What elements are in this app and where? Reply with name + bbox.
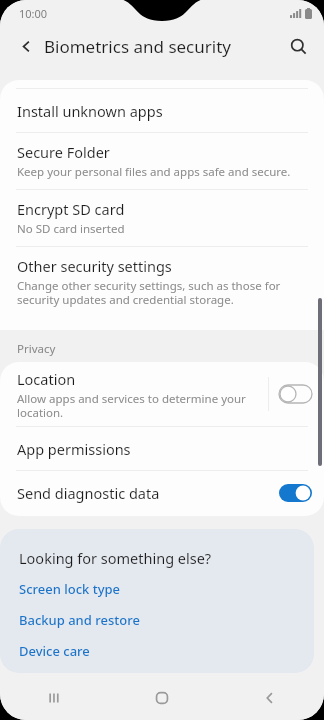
- staticText: No SD card inserted: [17, 221, 125, 237]
- staticText: Send diagnostic data: [17, 483, 160, 503]
- staticText: Screen lock type: [19, 580, 121, 598]
- staticText: Allow apps and services to determine you…: [17, 391, 246, 420]
- staticText: 10:00: [19, 6, 48, 21]
- button[interactable]: Home: [108, 676, 216, 720]
- button[interactable]: Secure Folder: [0, 133, 324, 189]
- button[interactable]: Back: [216, 676, 324, 720]
- button[interactable]: Send diagnostic data: [0, 471, 324, 515]
- staticText: Looking for something else?: [19, 548, 212, 568]
- staticText: Backup and restore: [19, 611, 140, 629]
- button[interactable]: Backup and restore: [19, 611, 314, 629]
- button[interactable]: Install unknown apps: [0, 89, 324, 132]
- button[interactable]: Encrypt SD card: [0, 190, 324, 246]
- button[interactable]: App permissions: [0, 427, 324, 470]
- staticText: Install unknown apps: [17, 101, 163, 121]
- button[interactable]: Location: [0, 362, 324, 426]
- staticText: Privacy: [17, 341, 56, 357]
- button[interactable]: Search: [281, 29, 315, 63]
- button[interactable]: Recent apps: [0, 676, 108, 720]
- button[interactable]: Navigate up: [9, 29, 43, 63]
- staticText: Encrypt SD card: [17, 199, 125, 219]
- staticText: Secure Folder: [17, 142, 110, 162]
- button[interactable]: Screen lock type: [19, 580, 314, 598]
- staticText: App permissions: [17, 439, 131, 459]
- button[interactable]: Device care: [19, 642, 314, 660]
- button[interactable]: On: [279, 484, 312, 502]
- staticText: Change other security settings, such as …: [17, 278, 281, 307]
- button[interactable]: Other security settings: [0, 247, 324, 315]
- staticText: Device care: [19, 642, 90, 660]
- button[interactable]: Off: [279, 385, 312, 403]
- staticText: Keep your personal files and apps safe a…: [17, 164, 291, 180]
- staticText: Location: [17, 369, 76, 389]
- staticText: Other security settings: [17, 256, 172, 276]
- staticText: Biometrics and security: [44, 35, 231, 58]
